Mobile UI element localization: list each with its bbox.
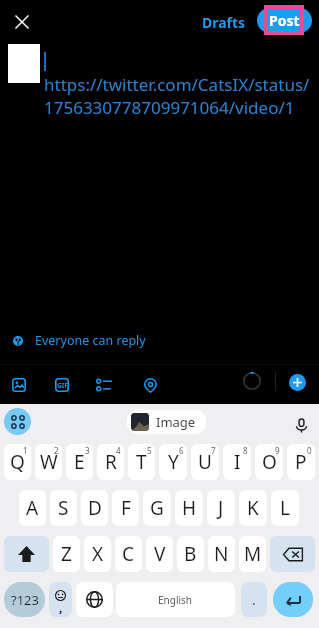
- staticText: W: [40, 449, 58, 475]
- button[interactable]: Emoji: [49, 582, 72, 617]
- staticText: 2: [54, 445, 59, 456]
- button[interactable]: O: [255, 444, 283, 480]
- button[interactable]: Close: [9, 9, 34, 34]
- staticText: 1: [23, 445, 28, 456]
- staticText: ,: [59, 598, 63, 616]
- staticText: O: [262, 449, 277, 475]
- button[interactable]: Change language: [76, 582, 113, 617]
- button[interactable]: Backspace: [270, 536, 315, 572]
- button[interactable]: Y: [159, 444, 187, 480]
- staticText: N: [214, 541, 229, 567]
- button[interactable]: W: [35, 444, 62, 480]
- staticText: English: [158, 593, 193, 607]
- button[interactable]: D: [81, 490, 108, 526]
- staticText: 4: [116, 445, 121, 456]
- button[interactable]: ?123: [4, 582, 45, 617]
- staticText: A: [26, 495, 39, 521]
- button[interactable]: C: [115, 536, 142, 572]
- button[interactable]: F: [112, 490, 139, 526]
- button[interactable]: P: [287, 444, 315, 480]
- staticText: V: [154, 541, 166, 567]
- button[interactable]: Tag location: [138, 373, 162, 397]
- staticText: Y: [168, 449, 179, 475]
- staticText: 3: [85, 445, 90, 456]
- button[interactable]: Everyone can reply: [0, 330, 319, 351]
- button[interactable]: Add another post: [289, 374, 306, 391]
- button[interactable]: Enter: [273, 582, 313, 617]
- button[interactable]: Drafts: [200, 10, 248, 35]
- staticText: X: [92, 541, 104, 567]
- button[interactable]: S: [50, 490, 77, 526]
- button[interactable]: J: [207, 490, 235, 526]
- button[interactable]: H: [175, 490, 203, 526]
- staticText: U: [198, 449, 212, 475]
- button[interactable]: .: [241, 582, 267, 617]
- staticText: H: [182, 495, 197, 521]
- staticText: Z: [61, 541, 72, 567]
- staticText: F: [121, 495, 131, 521]
- staticText: Post: [269, 11, 300, 30]
- button[interactable]: G: [143, 490, 171, 526]
- staticText: Image: [156, 413, 196, 431]
- button[interactable]: Image: [127, 410, 206, 434]
- button[interactable]: E: [66, 444, 93, 480]
- staticText: Everyone can reply: [35, 332, 146, 349]
- staticText: L: [280, 495, 290, 521]
- staticText: G: [150, 495, 164, 521]
- button[interactable]: U: [191, 444, 219, 480]
- staticText: Q: [10, 449, 25, 475]
- staticText: Drafts: [202, 13, 246, 32]
- button[interactable]: Add a GIF: [50, 373, 74, 397]
- staticText: https://twitter.com/CatsIX/status/175633…: [44, 73, 317, 119]
- staticText: D: [88, 495, 102, 521]
- button[interactable]: Open apps: [4, 408, 31, 435]
- button[interactable]: B: [177, 536, 204, 572]
- staticText: 6: [179, 445, 184, 456]
- button[interactable]: English: [116, 582, 235, 617]
- button[interactable]: Add photos or video: [7, 373, 31, 397]
- staticText: I: [234, 449, 241, 475]
- staticText: M: [244, 541, 262, 567]
- button[interactable]: R: [97, 444, 124, 480]
- staticText: 8: [243, 445, 248, 456]
- button[interactable]: N: [208, 536, 235, 572]
- staticText: GIF: [57, 381, 68, 390]
- button[interactable]: Q: [4, 444, 31, 480]
- button[interactable]: Add poll: [92, 373, 116, 397]
- staticText: .: [252, 590, 256, 609]
- staticText: C: [122, 541, 135, 567]
- button[interactable]: M: [239, 536, 266, 572]
- button[interactable]: V: [146, 536, 173, 572]
- staticText: R: [105, 449, 117, 475]
- button[interactable]: A: [19, 490, 46, 526]
- button[interactable]: I: [223, 444, 251, 480]
- staticText: S: [58, 495, 69, 521]
- button[interactable]: K: [239, 490, 267, 526]
- staticText: B: [184, 541, 197, 567]
- button[interactable]: L: [271, 490, 299, 526]
- staticText: P: [295, 449, 307, 475]
- staticText: 5: [147, 445, 152, 456]
- staticText: 0: [307, 445, 312, 456]
- staticText: 7: [211, 445, 216, 456]
- button[interactable]: T: [128, 444, 155, 480]
- button[interactable]: Z: [53, 536, 80, 572]
- button[interactable]: Voice input: [290, 414, 312, 436]
- staticText: K: [247, 495, 259, 521]
- staticText: 9: [275, 445, 280, 456]
- staticText: J: [218, 495, 224, 521]
- button[interactable]: Shift: [4, 536, 49, 572]
- staticText: T: [136, 449, 147, 475]
- staticText: E: [74, 449, 85, 475]
- staticText: ?123: [11, 591, 39, 609]
- button[interactable]: X: [84, 536, 111, 572]
- button[interactable]: [257, 8, 312, 33]
